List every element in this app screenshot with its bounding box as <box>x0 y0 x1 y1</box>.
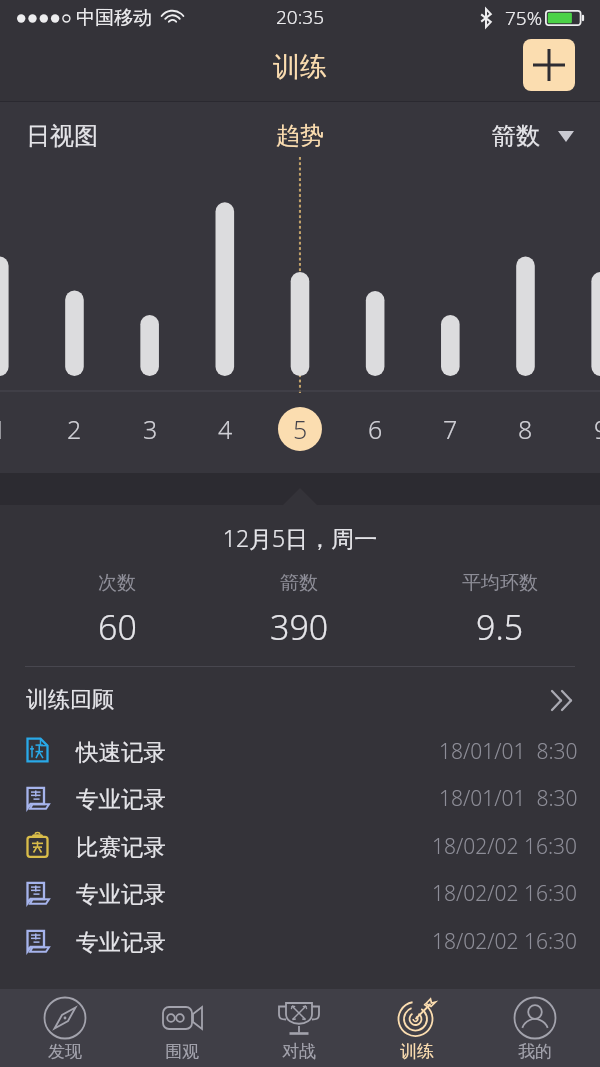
button[interactable]: 我的 <box>476 989 594 1067</box>
staticText: 快速记录 <box>76 738 166 766</box>
button[interactable]: 快速记录 <box>25 728 578 775</box>
staticText: 专业记录 <box>76 928 166 956</box>
staticText: 390 <box>270 604 329 650</box>
button[interactable]: Add training <box>523 39 575 91</box>
staticText: 次数 <box>98 571 136 595</box>
staticText: 20:35 <box>276 4 325 30</box>
staticText: 60 <box>98 604 137 650</box>
staticText: 18/02/02 16:30 <box>432 832 578 861</box>
staticText: 比赛记录 <box>76 833 166 861</box>
staticText: 箭数 <box>492 121 540 151</box>
button[interactable]: 训练回顾 <box>26 676 574 724</box>
staticText: 18/02/02 16:30 <box>432 879 578 908</box>
button[interactable]: 专业记录 <box>25 918 578 965</box>
button[interactable]: 训练 <box>358 989 476 1067</box>
staticText: 3 <box>143 412 158 446</box>
staticText: 发现 <box>48 1041 82 1062</box>
staticText: 8 <box>518 412 533 446</box>
button[interactable]: 发现 <box>6 989 123 1067</box>
button[interactable]: 比赛记录 <box>25 823 578 870</box>
button[interactable]: 专业记录 <box>25 775 578 822</box>
staticText: 5 <box>293 412 308 446</box>
staticText: 7 <box>443 412 458 446</box>
staticText: 围观 <box>165 1041 199 1062</box>
staticText: 训练回顾 <box>26 686 114 714</box>
staticText: 专业记录 <box>76 880 166 908</box>
staticText: 我的 <box>518 1041 552 1062</box>
staticText: 箭数 <box>280 571 318 595</box>
staticText: 9 <box>594 412 600 446</box>
button[interactable]: 趋势 <box>276 121 324 151</box>
staticText: 训练 <box>400 1041 434 1062</box>
staticText: 6 <box>368 412 383 446</box>
staticText: 专业记录 <box>76 785 166 813</box>
button[interactable]: 专业记录 <box>25 870 578 917</box>
staticText: 4 <box>218 412 233 446</box>
staticText: 18/02/02 16:30 <box>432 927 578 956</box>
staticText: 平均环数 <box>462 571 538 595</box>
staticText: 9.5 <box>476 604 524 650</box>
staticText: 18/01/01 8:30 <box>439 737 578 766</box>
button[interactable]: 对战 <box>240 989 358 1067</box>
button[interactable]: 箭数 <box>492 121 574 151</box>
button[interactable]: 围观 <box>123 989 240 1067</box>
staticText: 2 <box>67 412 82 446</box>
staticText: 中国移动 <box>76 6 152 30</box>
staticText: 对战 <box>282 1041 316 1062</box>
staticText: 训练 <box>273 50 327 84</box>
staticText: 1 <box>0 412 7 446</box>
other: See all <box>552 691 574 710</box>
button[interactable]: 日视图 <box>26 121 98 151</box>
staticText: 75% <box>505 5 543 31</box>
staticText: 12月5日，周一 <box>0 522 600 553</box>
staticText: 18/01/01 8:30 <box>439 784 578 813</box>
